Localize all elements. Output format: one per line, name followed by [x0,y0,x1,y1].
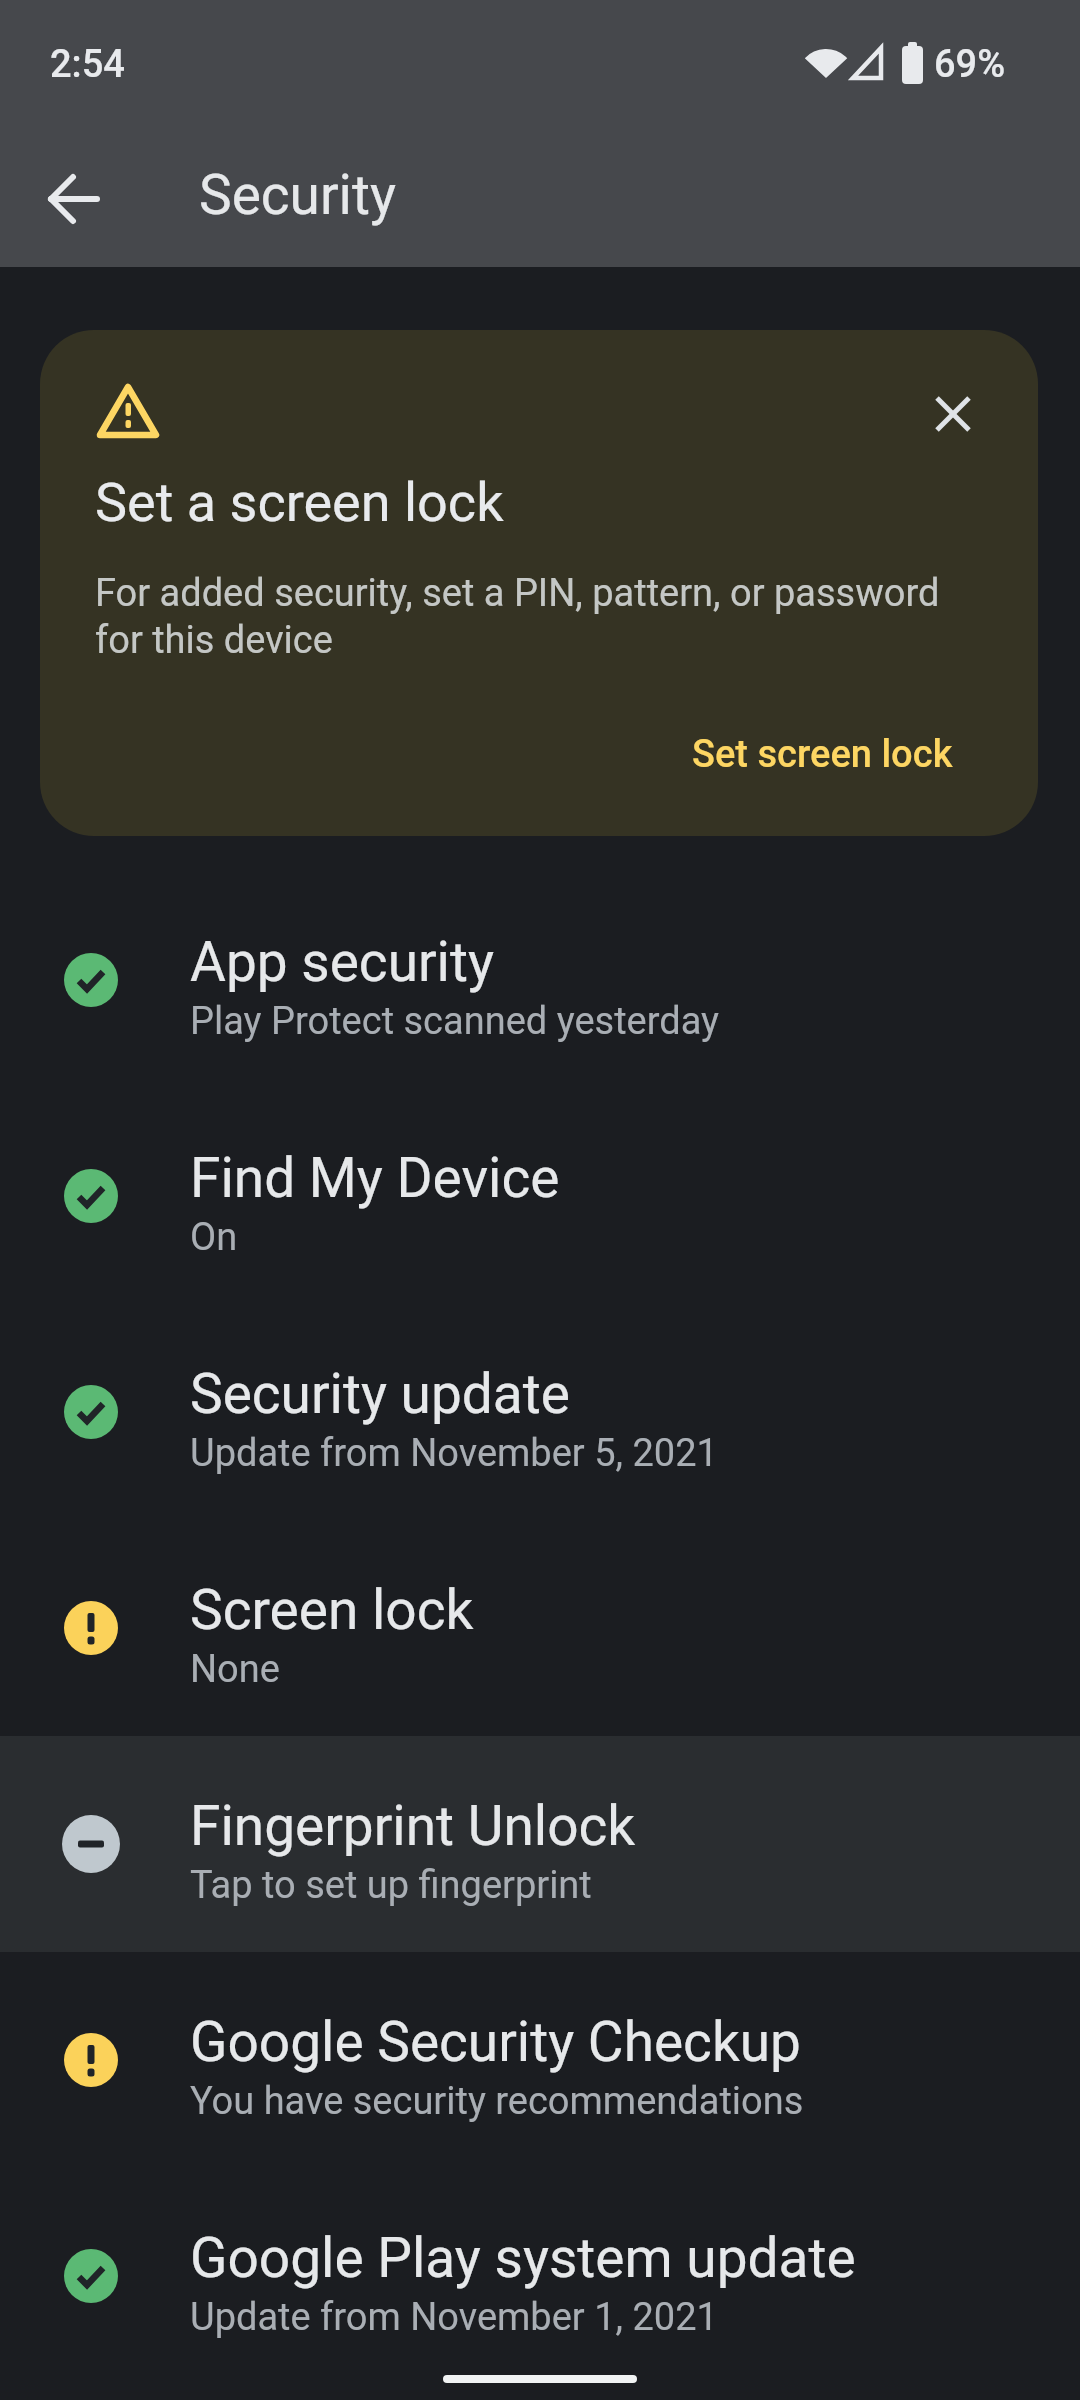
button[interactable]: Security update [0,1304,1080,1520]
staticText: None [190,1647,280,1692]
button[interactable]: Find My Device [0,1088,1080,1304]
staticText: 69% [934,42,1006,87]
button[interactable]: Fingerprint Unlock [0,1736,1080,1952]
staticText: 2:54 [50,42,125,87]
staticText: Tap to set up fingerprint [190,1863,592,1908]
staticText: Set a screen lock [95,471,504,534]
staticText: Google Security Checkup [190,2010,801,2074]
staticText: App security [190,930,494,994]
button[interactable]: Google Play system update [0,2168,1080,2384]
staticText: Fingerprint Unlock [190,1794,636,1858]
staticText: Play Protect scanned yesterday [190,999,720,1044]
staticText: Security update [190,1362,570,1426]
staticText: Set screen lock [692,732,953,777]
button[interactable] [909,370,997,458]
staticText: You have security recommendations [190,2079,804,2124]
staticText: For added security, set a PIN, pattern, … [95,571,940,662]
button[interactable]: Google Security Checkup [0,1952,1080,2168]
staticText: Screen lock [190,1578,474,1642]
staticText: Google Play system update [190,2226,856,2290]
staticText: Security [199,163,396,227]
button[interactable]: Screen lock [0,1520,1080,1736]
staticText: On [190,1215,238,1260]
button[interactable]: App security [0,872,1080,1088]
staticText: Find My Device [190,1146,560,1210]
button[interactable] [30,155,118,243]
button[interactable]: Set screen lock [667,711,978,798]
staticText: Update from November 1, 2021 [190,2295,718,2340]
staticText: Update from November 5, 2021 [190,1431,718,1476]
